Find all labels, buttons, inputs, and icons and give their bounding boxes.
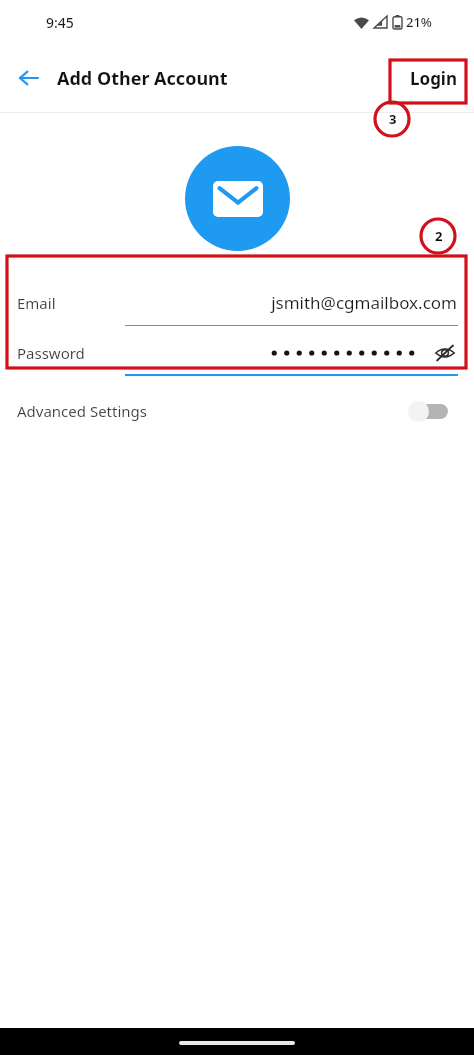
staticText: Login: [410, 67, 458, 90]
staticText: jsmith@cgmailbox.com: [271, 291, 457, 314]
staticText: 21%: [406, 13, 432, 31]
button[interactable]: Advanced Settings: [0, 390, 474, 432]
staticText: 9:45: [46, 13, 74, 32]
staticText: Advanced Settings: [17, 401, 147, 421]
button[interactable]: Login: [402, 59, 466, 98]
button[interactable]: Back: [12, 61, 46, 95]
staticText: Add Other Account: [57, 66, 228, 91]
staticText: 3: [389, 110, 397, 127]
button[interactable]: Email: [0, 279, 474, 326]
staticText: Email: [17, 293, 56, 313]
staticText: Password: [17, 343, 85, 363]
button[interactable]: Show password: [432, 340, 458, 366]
button[interactable]: Password: [0, 329, 474, 376]
staticText: 2: [435, 227, 443, 244]
